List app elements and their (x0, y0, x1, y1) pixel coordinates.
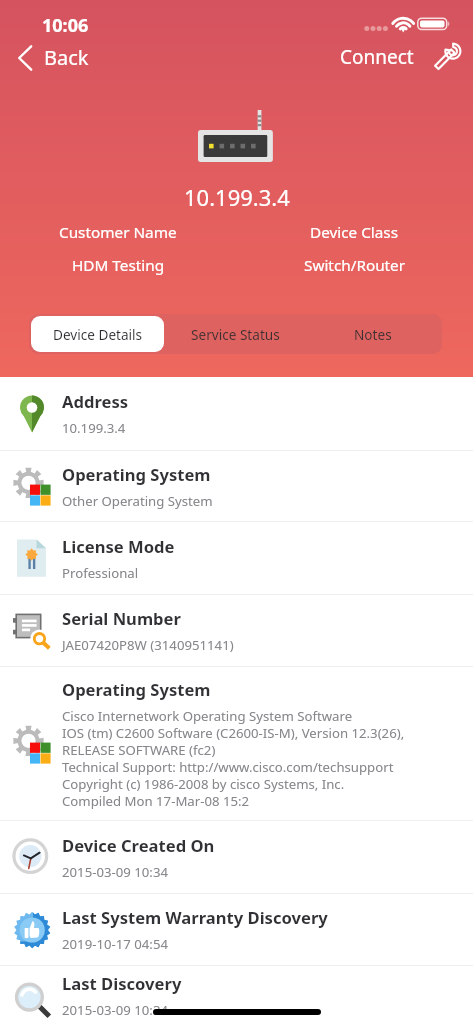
staticText: Switch/Router (304, 255, 406, 276)
button[interactable]: Device Details (31, 316, 164, 352)
button[interactable]: Connect (334, 36, 420, 78)
staticText: Device Class (310, 222, 399, 243)
staticText: Last Discovery (62, 972, 182, 995)
button[interactable]: Back (12, 37, 95, 78)
button[interactable]: Last System Warranty Discovery (0, 894, 473, 966)
staticText: Address (62, 390, 129, 413)
staticText: Operating System (62, 678, 211, 701)
staticText: Other Operating System (62, 492, 213, 510)
staticText: Serial Number (62, 607, 181, 630)
staticText: Cisco Internetwork Operating System Soft… (62, 707, 405, 810)
staticText: Professional (62, 564, 139, 582)
staticText: HDM Testing (72, 255, 165, 276)
button[interactable]: Last Discovery (0, 966, 473, 1024)
staticText: Last System Warranty Discovery (62, 906, 328, 929)
staticText: Notes (354, 325, 392, 344)
button[interactable]: Device Created On (0, 821, 473, 894)
staticText: Customer Name (59, 222, 177, 243)
button[interactable]: Operating System (0, 667, 473, 821)
staticText: Back (44, 44, 89, 71)
button[interactable]: Service Status (168, 316, 302, 352)
staticText: Operating System (62, 463, 211, 486)
staticText: 2019-10-17 04:54 (62, 935, 168, 953)
button[interactable]: License Mode (0, 522, 473, 595)
staticText: 2015-03-09 10:34 (62, 863, 168, 881)
staticText: Device Details (53, 325, 143, 344)
staticText: 10:06 (42, 13, 89, 38)
button[interactable]: Notes (306, 316, 440, 352)
staticText: 10.199.3.4 (62, 419, 126, 437)
staticText: Connect (340, 44, 414, 70)
staticText: Service Status (191, 325, 280, 344)
staticText: 2015-03-09 10:34 (62, 1001, 168, 1019)
button[interactable]: Address (0, 377, 473, 451)
staticText: 10.199.3.4 (184, 182, 290, 212)
staticText: Device Created On (62, 834, 215, 857)
button[interactable]: Operating System (0, 451, 473, 522)
button[interactable]: Serial Number (0, 595, 473, 667)
staticText: JAE07420P8W (3140951141) (62, 636, 234, 654)
button[interactable]: Tools (430, 40, 464, 74)
staticText: License Mode (62, 535, 175, 558)
